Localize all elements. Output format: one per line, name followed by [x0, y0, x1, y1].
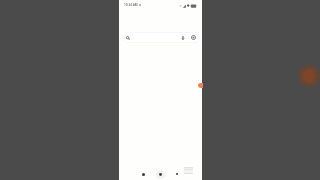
button[interactable]: Recents: [172, 169, 182, 179]
button[interactable]: Side handle: [198, 83, 203, 88]
button[interactable]: Screenshot preview: [184, 167, 193, 174]
button[interactable]: [122, 32, 200, 43]
staticText: 10:24 AM: [124, 3, 138, 7]
button[interactable]: Back: [138, 169, 148, 179]
button[interactable]: Home: [155, 169, 165, 179]
